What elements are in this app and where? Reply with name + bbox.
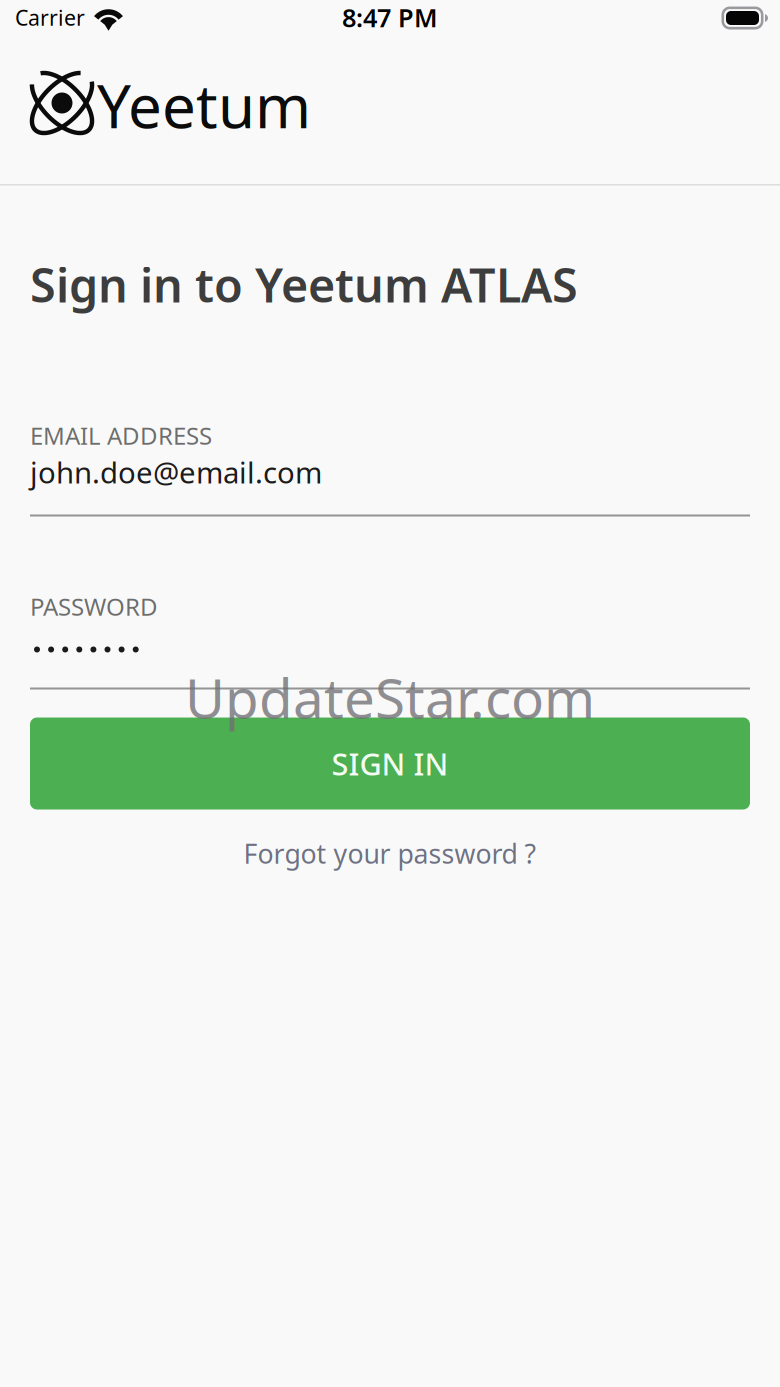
staticText: PASSWORD [30, 591, 158, 622]
staticText: 8:47 PM [342, 1, 438, 34]
button[interactable]: Forgot your password ? [30, 829, 750, 877]
staticText: EMAIL ADDRESS [30, 420, 212, 451]
staticText: Sign in to Yeetum ATLAS [30, 253, 578, 315]
staticText: Yeetum [97, 65, 311, 145]
button[interactable]: SIGN IN [30, 717, 750, 809]
staticText: john.doe@email.com [30, 452, 322, 491]
button[interactable]: PASSWORD [30, 595, 750, 689]
button[interactable]: EMAIL ADDRESS [30, 424, 750, 516]
staticText: SIGN IN [331, 743, 448, 784]
staticText: Forgot your password ? [243, 836, 536, 871]
staticText: Carrier [15, 3, 85, 32]
staticText: UpdateStar.com [185, 661, 595, 734]
